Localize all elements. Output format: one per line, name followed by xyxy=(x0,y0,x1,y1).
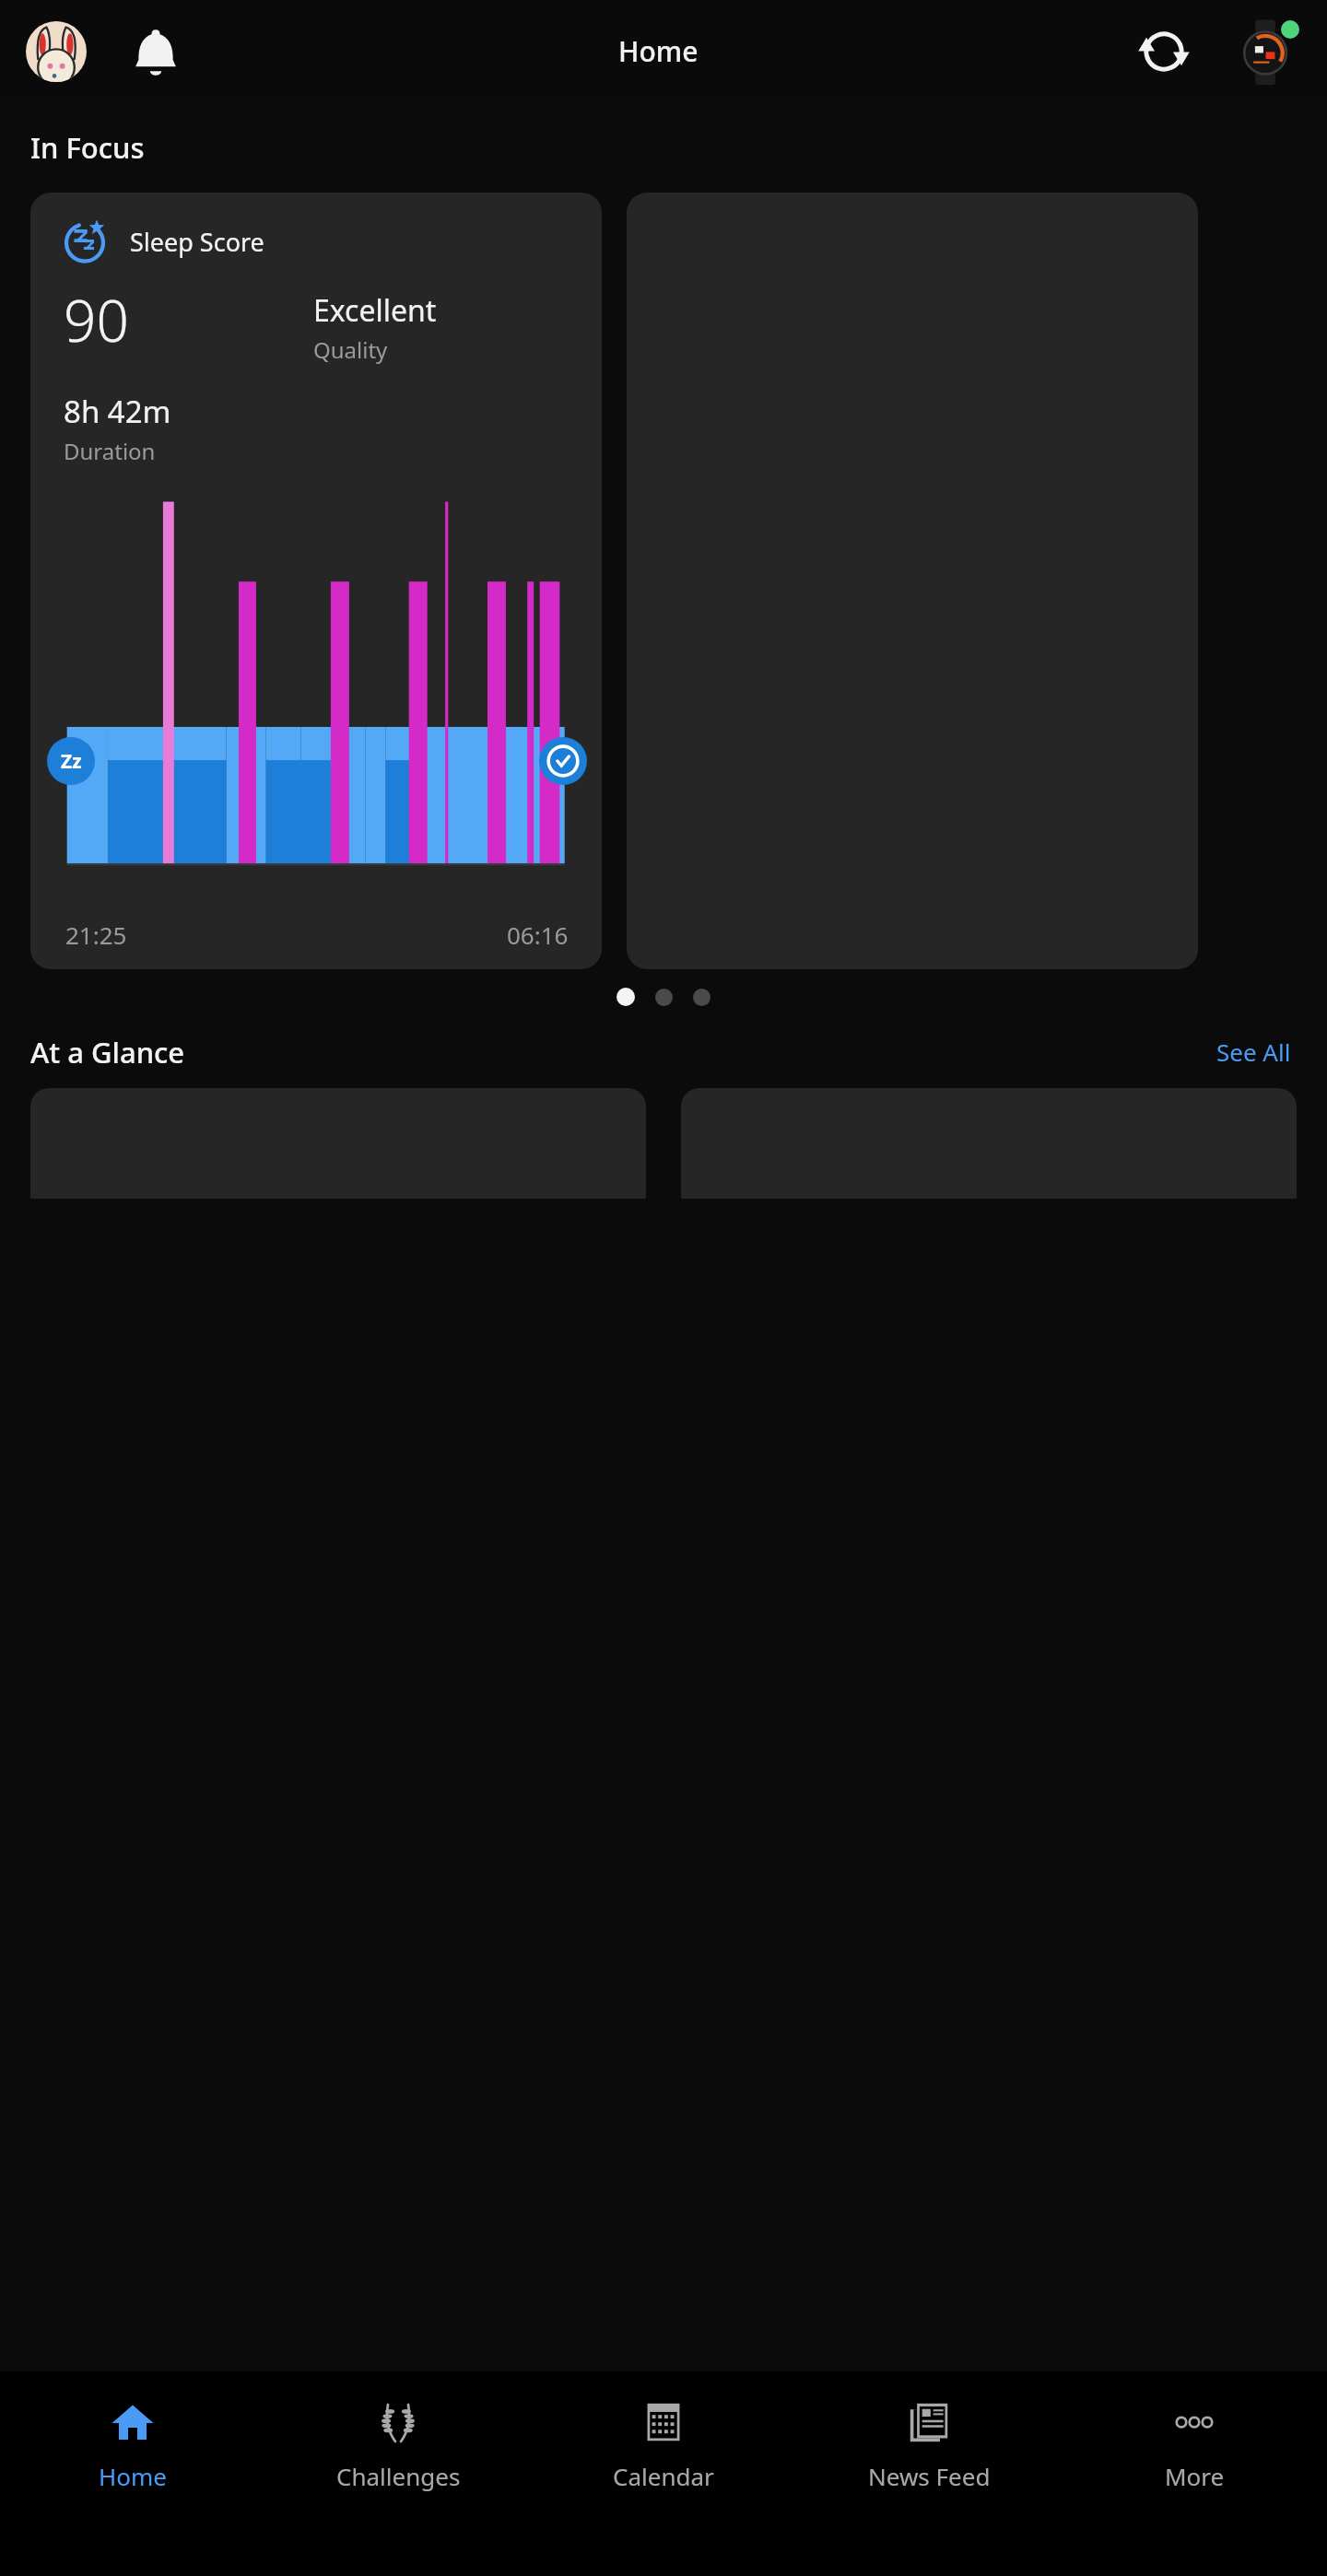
button[interactable]: Calendar xyxy=(531,2371,796,2576)
staticText: News Feed xyxy=(868,2460,991,2492)
staticText: Quality xyxy=(313,334,388,365)
staticText: Home xyxy=(99,2460,167,2492)
staticText: Calendar xyxy=(613,2460,714,2492)
staticText: Challenges xyxy=(336,2460,461,2492)
staticText: See All xyxy=(1216,1036,1291,1068)
staticText: 06:16 xyxy=(507,919,569,951)
button[interactable]: See All xyxy=(1211,1030,1297,1073)
staticText: Duration xyxy=(64,436,156,466)
staticText: More xyxy=(1165,2460,1225,2492)
button[interactable]: Sync xyxy=(1133,21,1194,82)
staticText: 21:25 xyxy=(65,919,127,951)
staticText: Sleep Score xyxy=(130,225,264,259)
button[interactable]: More xyxy=(1062,2371,1327,2576)
button[interactable]: Profile xyxy=(26,21,87,82)
staticText: 90 xyxy=(64,281,129,358)
button[interactable]: Sleep Score xyxy=(30,193,602,969)
button[interactable]: Challenges xyxy=(265,2371,531,2576)
staticText: At a Glance xyxy=(30,1033,185,1071)
button[interactable]: Notifications xyxy=(127,23,184,80)
staticText: Zz xyxy=(61,748,82,775)
button[interactable]: Home xyxy=(0,2371,265,2576)
staticText: 8h 42m xyxy=(64,391,171,432)
staticText: Excellent xyxy=(313,290,437,331)
button[interactable]: News Feed xyxy=(796,2371,1062,2576)
button[interactable]: My Device xyxy=(1235,18,1301,85)
staticText: Home xyxy=(618,32,699,70)
staticText: In Focus xyxy=(30,128,145,167)
